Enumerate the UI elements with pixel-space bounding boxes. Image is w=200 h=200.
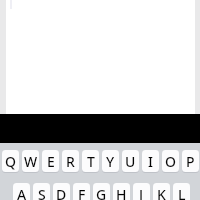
staticText: Q (5, 152, 16, 171)
button[interactable]: O (162, 150, 179, 173)
staticText: T (87, 152, 95, 171)
staticText: J (139, 185, 144, 200)
button[interactable]: U (122, 150, 139, 173)
button[interactable]: E (42, 150, 59, 173)
staticText: F (78, 185, 86, 200)
button[interactable]: T (82, 150, 99, 173)
button[interactable]: K (153, 183, 170, 200)
button[interactable]: F (73, 183, 90, 200)
button[interactable]: G (93, 183, 110, 200)
staticText: L (178, 185, 186, 200)
button[interactable]: I (142, 150, 159, 173)
staticText: Y (106, 152, 115, 171)
staticText: W (24, 152, 38, 171)
button[interactable]: W (22, 150, 39, 173)
staticText: U (125, 152, 136, 171)
button[interactable]: L (173, 183, 190, 200)
button[interactable]: J (133, 183, 150, 200)
button[interactable]: P (182, 150, 199, 173)
staticText: K (157, 185, 166, 200)
staticText: I (148, 152, 153, 171)
button[interactable]: R (62, 150, 79, 173)
button[interactable]: Y (102, 150, 119, 173)
button[interactable]: A (13, 183, 30, 200)
button[interactable]: Q (2, 150, 19, 173)
staticText: R (66, 152, 75, 171)
staticText: O (165, 152, 176, 171)
button[interactable]: D (53, 183, 70, 200)
staticText: D (56, 185, 67, 200)
staticText: G (96, 185, 107, 200)
staticText: H (116, 185, 127, 200)
staticText: A (17, 185, 27, 200)
button[interactable]: S (33, 183, 50, 200)
staticText: P (186, 152, 195, 171)
staticText: S (38, 185, 46, 200)
button[interactable]: H (113, 183, 130, 200)
staticText: E (47, 152, 55, 171)
